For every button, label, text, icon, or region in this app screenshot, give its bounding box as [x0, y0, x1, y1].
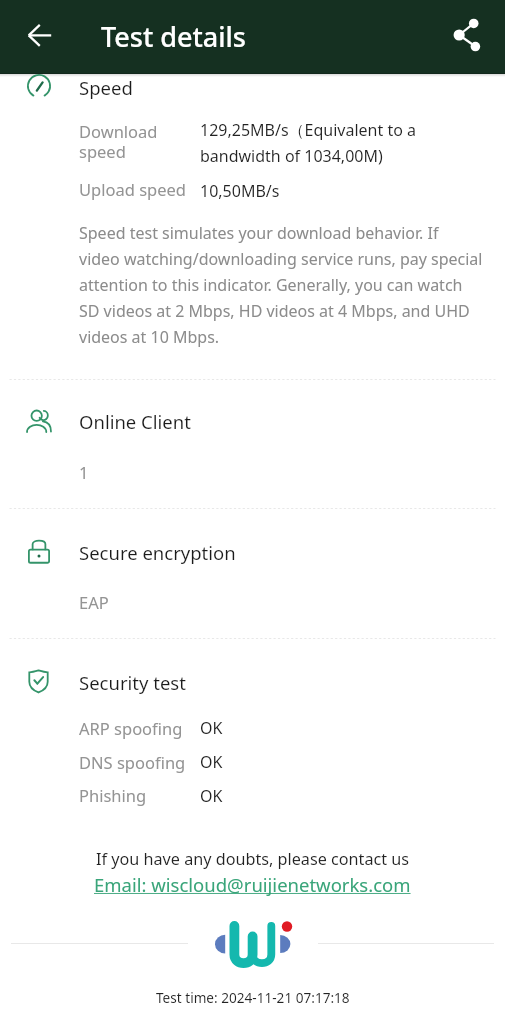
staticText: OK: [200, 717, 223, 739]
staticText: Test details: [101, 18, 246, 55]
staticText: Online Client: [79, 409, 191, 434]
staticText: Secure encryption: [79, 540, 236, 565]
staticText: Upload speed: [79, 178, 186, 200]
staticText: 10,50MB/s: [200, 180, 280, 202]
staticText: 129,25MB/s（Equivalent to a bandwidth of …: [200, 119, 460, 166]
staticText: Phishing: [79, 784, 147, 806]
staticText: Speed: [79, 75, 133, 100]
staticText: Email: wiscloud@ruijienetworks.com: [94, 872, 411, 897]
staticText: If you have any doubts, please contact u…: [96, 848, 410, 870]
staticText: DNS spoofing: [79, 751, 186, 773]
staticText: Test time: 2024-11-21 07:17:18: [156, 988, 350, 1007]
staticText: Security test: [79, 670, 186, 695]
staticText: Download speed: [79, 120, 158, 163]
staticText: EAP: [79, 591, 109, 613]
button[interactable]: Back: [15, 11, 63, 59]
staticText: 1: [79, 461, 89, 483]
staticText: ARP spoofing: [79, 717, 183, 739]
staticText: OK: [200, 785, 223, 807]
button[interactable]: Email: wiscloud@ruijienetworks.com: [94, 872, 411, 897]
staticText: OK: [200, 751, 223, 773]
button[interactable]: Share: [443, 11, 491, 59]
staticText: Speed test simulates your download behav…: [79, 222, 499, 348]
